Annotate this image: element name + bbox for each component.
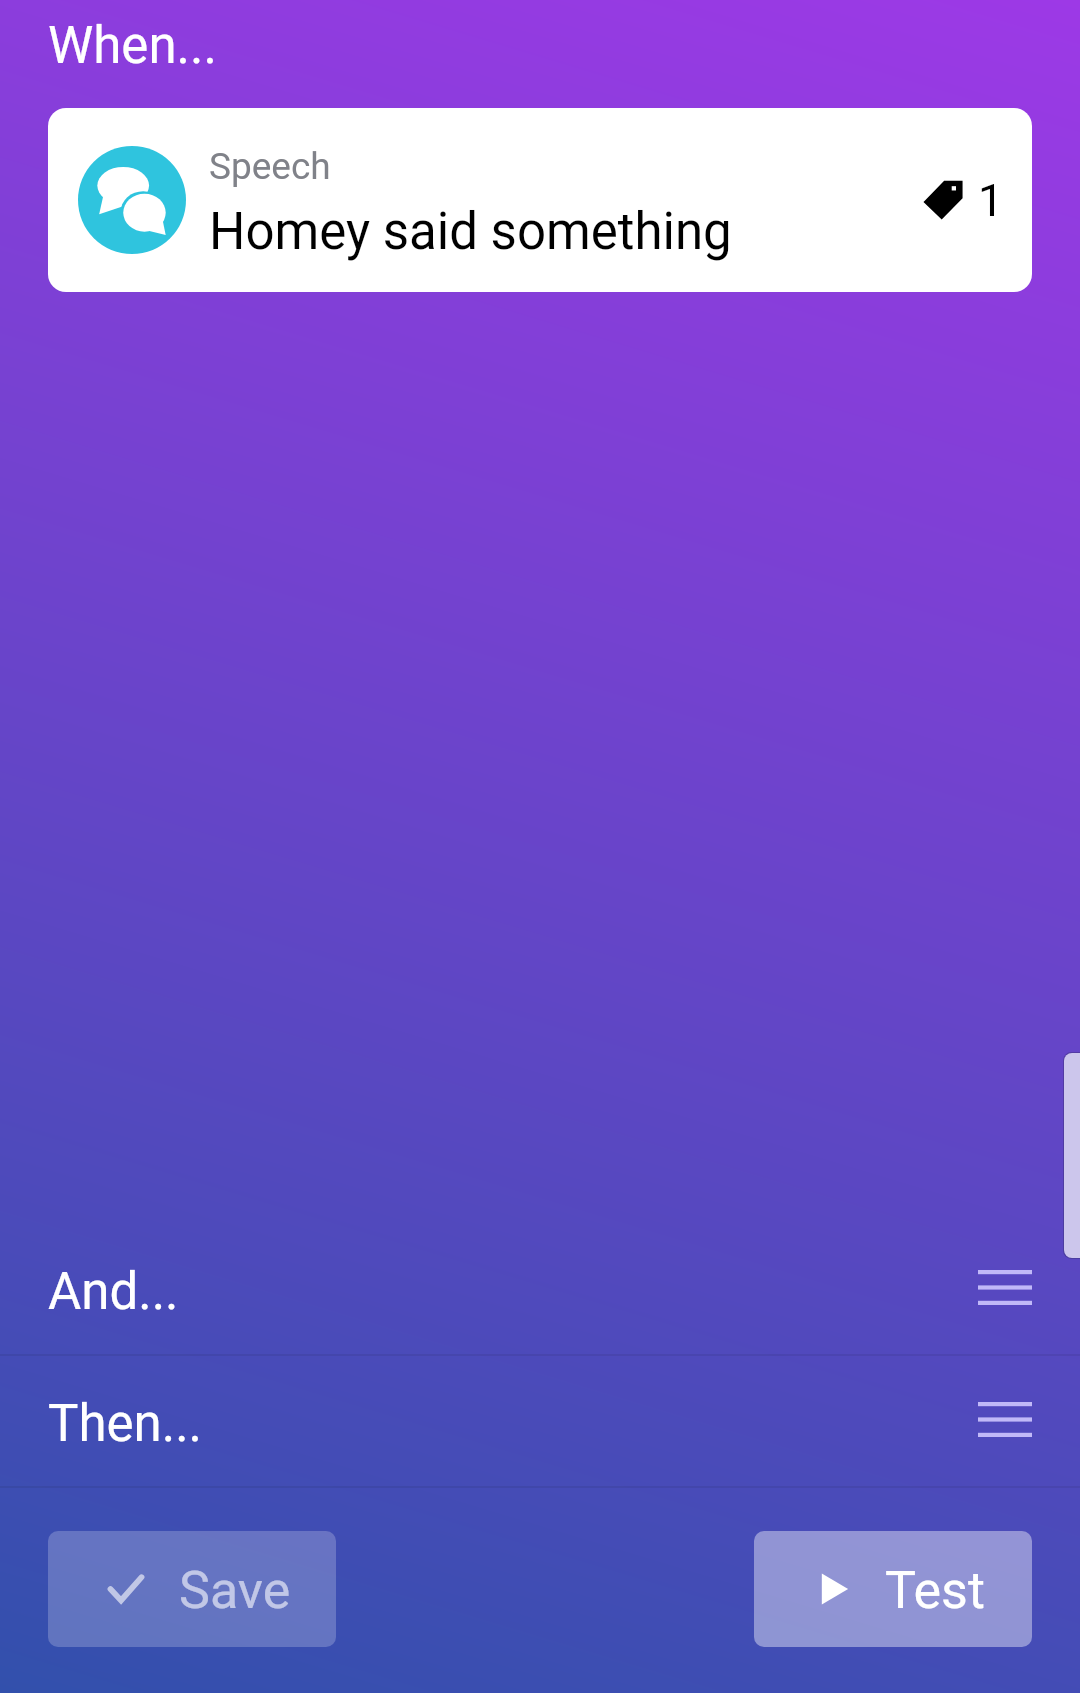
other: Reorder <box>978 1270 1032 1302</box>
other: Speech trigger <box>78 146 186 254</box>
staticText: And... <box>48 1262 179 1322</box>
staticText: Test <box>885 1560 985 1621</box>
other: Tags <box>923 179 964 220</box>
button[interactable]: Speech trigger <box>48 108 1032 292</box>
staticText: Then... <box>48 1394 203 1454</box>
button[interactable]: Test <box>754 1531 1032 1647</box>
staticText: 1 <box>978 174 1004 227</box>
staticText: Speech <box>209 145 331 188</box>
button[interactable]: Save <box>48 1531 336 1647</box>
staticText: Homey said something <box>209 202 732 262</box>
other: Reorder <box>978 1402 1032 1434</box>
staticText: When... <box>48 16 217 76</box>
button[interactable]: And... <box>0 1220 1080 1354</box>
staticText: Save <box>179 1560 291 1621</box>
button[interactable]: Then... <box>0 1356 1080 1486</box>
